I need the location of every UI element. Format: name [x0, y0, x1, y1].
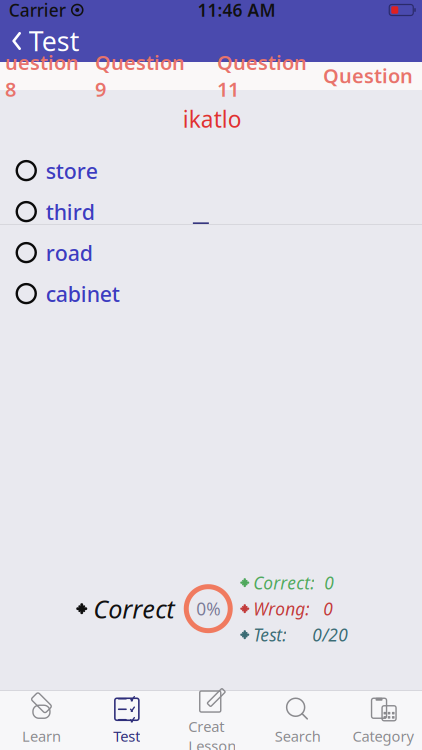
button[interactable]: Search [255, 691, 340, 750]
staticText: 0/20 [312, 623, 348, 646]
button[interactable]: Test [0, 17, 92, 65]
button[interactable]: Category [340, 691, 422, 750]
button[interactable]: Question 11 [209, 49, 315, 102]
button[interactable]: cabinet [0, 273, 422, 314]
staticText: third [46, 197, 95, 226]
staticText: 0% [196, 597, 220, 620]
staticText: Test [29, 23, 80, 59]
button[interactable]: third [0, 191, 422, 232]
button[interactable]: Test [84, 691, 169, 750]
button[interactable]: uestion 8 [0, 49, 87, 102]
staticText: Correct [93, 592, 174, 625]
staticText: Category [353, 726, 414, 746]
button[interactable]: store [0, 150, 422, 191]
staticText: Test: [253, 623, 286, 646]
staticText: store [46, 156, 98, 185]
staticText: Creat Lesson [188, 716, 236, 750]
staticText: Question 11 [217, 49, 307, 102]
button[interactable]: Question 10 [193, 0, 209, 224]
button[interactable]: Question [315, 62, 413, 89]
button[interactable]: road [0, 232, 422, 273]
button[interactable]: Creat Lesson [169, 691, 255, 750]
staticText: Wrong: [253, 597, 309, 620]
staticText: Correct: [253, 571, 314, 594]
staticText: Learn [22, 726, 61, 746]
staticText: uestion 8 [5, 49, 79, 102]
staticText: Test [113, 726, 140, 746]
button[interactable]: Learn [0, 691, 84, 750]
button[interactable]: Question 9 [87, 49, 193, 102]
staticText: ikatlo [183, 104, 242, 134]
staticText: 0 [324, 571, 334, 594]
staticText: Question 9 [95, 49, 185, 102]
staticText: 11:46 AM [197, 0, 275, 21]
staticText: Carrier [9, 0, 66, 21]
staticText: 0 [323, 597, 333, 620]
staticText: Question [323, 62, 413, 89]
staticText: Search [275, 726, 321, 746]
staticText: road [46, 238, 93, 267]
staticText: cabinet [46, 279, 120, 308]
